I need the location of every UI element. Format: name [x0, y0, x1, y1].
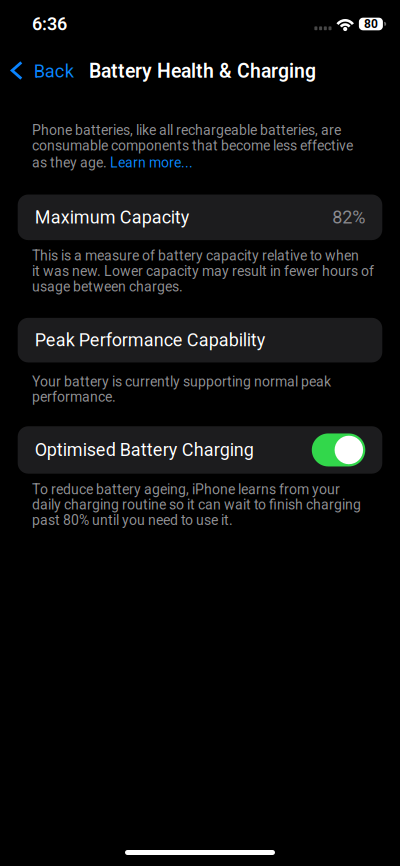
staticText: Learn more...	[110, 155, 193, 171]
staticText: To reduce battery ageing, iPhone learns …	[32, 481, 361, 528]
staticText: This is a measure of battery capacity re…	[32, 248, 374, 295]
button[interactable]: Optimised Battery Charging	[312, 433, 365, 466]
staticText: 82%	[332, 207, 365, 228]
staticText: Your battery is currently supporting nor…	[32, 373, 331, 405]
staticText: Battery Health & Charging	[89, 60, 316, 82]
button[interactable]: Peak Performance Capability	[0, 318, 400, 362]
staticText: Maximum Capacity	[35, 207, 190, 228]
staticText: Optimised Battery Charging	[35, 439, 254, 460]
staticText: as they age.	[32, 155, 110, 171]
button[interactable]: Learn more...	[110, 155, 193, 171]
staticText: Peak Performance Capability	[35, 330, 266, 351]
staticText: Back	[34, 60, 74, 82]
staticText: 6:36	[32, 13, 67, 35]
staticText: Phone batteries, like all rechargeable b…	[32, 122, 353, 154]
staticText: 80	[364, 17, 378, 31]
button[interactable]: Back	[0, 48, 86, 88]
